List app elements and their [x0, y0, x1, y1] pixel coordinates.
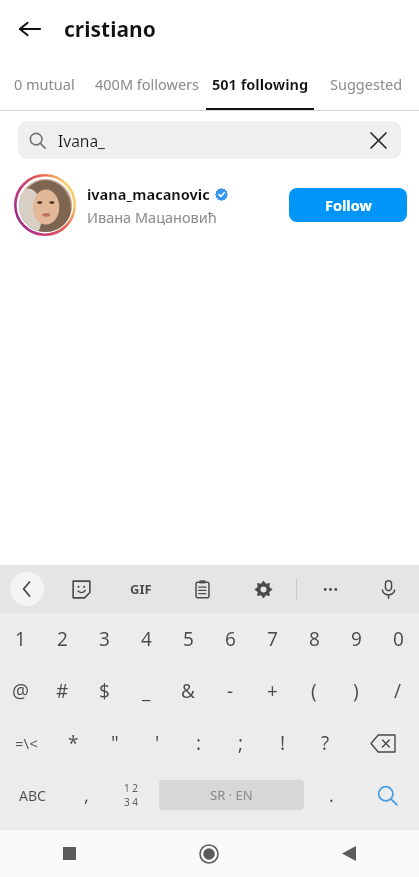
- staticText: -: [227, 678, 234, 704]
- staticText: &: [181, 678, 195, 704]
- button[interactable]: SR · EN: [159, 780, 304, 810]
- staticText: :: [196, 730, 202, 756]
- button[interactable]: ;: [220, 717, 262, 769]
- button[interactable]: Search: [355, 769, 419, 821]
- staticText: 2: [57, 626, 68, 652]
- button[interactable]: Collapse toolbar: [10, 572, 44, 606]
- staticText: 400M followers: [95, 74, 200, 94]
- staticText: ,: [84, 783, 89, 808]
- button[interactable]: 2: [41, 613, 83, 665]
- button[interactable]: 3: [83, 613, 125, 665]
- staticText: 1: [15, 626, 26, 652]
- staticText: 4: [141, 626, 152, 652]
- staticText: ": [111, 730, 119, 756]
- button[interactable]: *: [52, 717, 94, 769]
- button[interactable]: =\<: [0, 717, 52, 769]
- staticText: SR · EN: [210, 786, 253, 804]
- button[interactable]: ivana_macanovic: [0, 169, 419, 241]
- staticText: Ivana_: [58, 130, 105, 151]
- staticText: !: [280, 730, 286, 756]
- button[interactable]: #: [41, 665, 83, 717]
- staticText: Suggested: [330, 74, 403, 94]
- staticText: 1 2: [124, 781, 139, 795]
- button[interactable]: Recent apps: [0, 830, 139, 877]
- staticText: .: [329, 783, 334, 808]
- staticText: $: [99, 678, 110, 704]
- button[interactable]: .: [308, 769, 355, 821]
- button[interactable]: @: [0, 665, 41, 717]
- staticText: #: [56, 678, 69, 704]
- staticText: 0: [393, 626, 404, 652]
- button[interactable]: 501 following: [206, 58, 314, 110]
- button[interactable]: ?: [304, 717, 346, 769]
- button[interactable]: Clipboard: [183, 570, 221, 608]
- button[interactable]: Home: [139, 830, 279, 877]
- staticText: *: [68, 730, 79, 756]
- button[interactable]: 4: [125, 613, 167, 665]
- staticText: =\<: [15, 733, 38, 753]
- button[interactable]: ABC: [0, 769, 65, 821]
- button[interactable]: 7: [251, 613, 293, 665]
- staticText: (: [311, 678, 317, 704]
- button[interactable]: Backspace: [346, 717, 419, 769]
- button[interactable]: Back: [8, 7, 52, 51]
- button[interactable]: 8: [293, 613, 335, 665]
- staticText: ivana_macanovic: [87, 184, 210, 204]
- button[interactable]: ): [335, 665, 377, 717]
- staticText: ABC: [19, 786, 46, 805]
- staticText: 3 4: [124, 795, 139, 809]
- button[interactable]: 1: [0, 613, 41, 665]
- staticText: 6: [225, 626, 236, 652]
- staticText: ': [155, 730, 160, 756]
- button[interactable]: 0 mutual: [0, 58, 88, 110]
- button[interactable]: GIF: [122, 570, 160, 608]
- staticText: ;: [238, 730, 244, 756]
- button[interactable]: Back: [279, 830, 419, 877]
- button[interactable]: Stickers: [62, 570, 100, 608]
- staticText: cristiano: [64, 15, 156, 44]
- button[interactable]: ,: [65, 769, 108, 821]
- staticText: ?: [321, 730, 330, 756]
- button[interactable]: &: [167, 665, 209, 717]
- button[interactable]: Clear: [361, 123, 395, 157]
- button[interactable]: 6: [209, 613, 251, 665]
- button[interactable]: More options: [311, 570, 349, 608]
- button[interactable]: Ivana_: [18, 121, 401, 159]
- staticText: /: [394, 678, 402, 704]
- staticText: _: [142, 678, 151, 704]
- button[interactable]: 5: [167, 613, 209, 665]
- button[interactable]: /: [377, 665, 419, 717]
- button[interactable]: -: [209, 665, 251, 717]
- staticText: GIF: [130, 580, 152, 598]
- button[interactable]: !: [262, 717, 304, 769]
- button[interactable]: ': [136, 717, 178, 769]
- staticText: ): [353, 678, 359, 704]
- button[interactable]: 9: [335, 613, 377, 665]
- staticText: 0 mutual: [14, 74, 75, 94]
- button[interactable]: _: [125, 665, 167, 717]
- staticText: 7: [267, 626, 278, 652]
- staticText: 8: [309, 626, 320, 652]
- button[interactable]: :: [178, 717, 220, 769]
- staticText: +: [267, 678, 278, 704]
- button[interactable]: +: [251, 665, 293, 717]
- button[interactable]: ": [94, 717, 136, 769]
- button[interactable]: 0: [377, 613, 419, 665]
- staticText: 5: [183, 626, 194, 652]
- staticText: @: [12, 678, 30, 704]
- button[interactable]: 400M followers: [88, 58, 206, 110]
- staticText: Ивана Мацановић: [87, 207, 217, 227]
- staticText: 501 following: [212, 74, 309, 94]
- button[interactable]: (: [293, 665, 335, 717]
- button[interactable]: Numbers: [108, 769, 155, 821]
- staticText: 3: [99, 626, 110, 652]
- button[interactable]: Voice input: [369, 570, 407, 608]
- button[interactable]: $: [83, 665, 125, 717]
- button[interactable]: Settings: [244, 570, 282, 608]
- staticText: Follow: [325, 195, 372, 215]
- staticText: 9: [351, 626, 362, 652]
- button[interactable]: Follow: [289, 188, 407, 222]
- button[interactable]: Suggested: [314, 58, 419, 110]
